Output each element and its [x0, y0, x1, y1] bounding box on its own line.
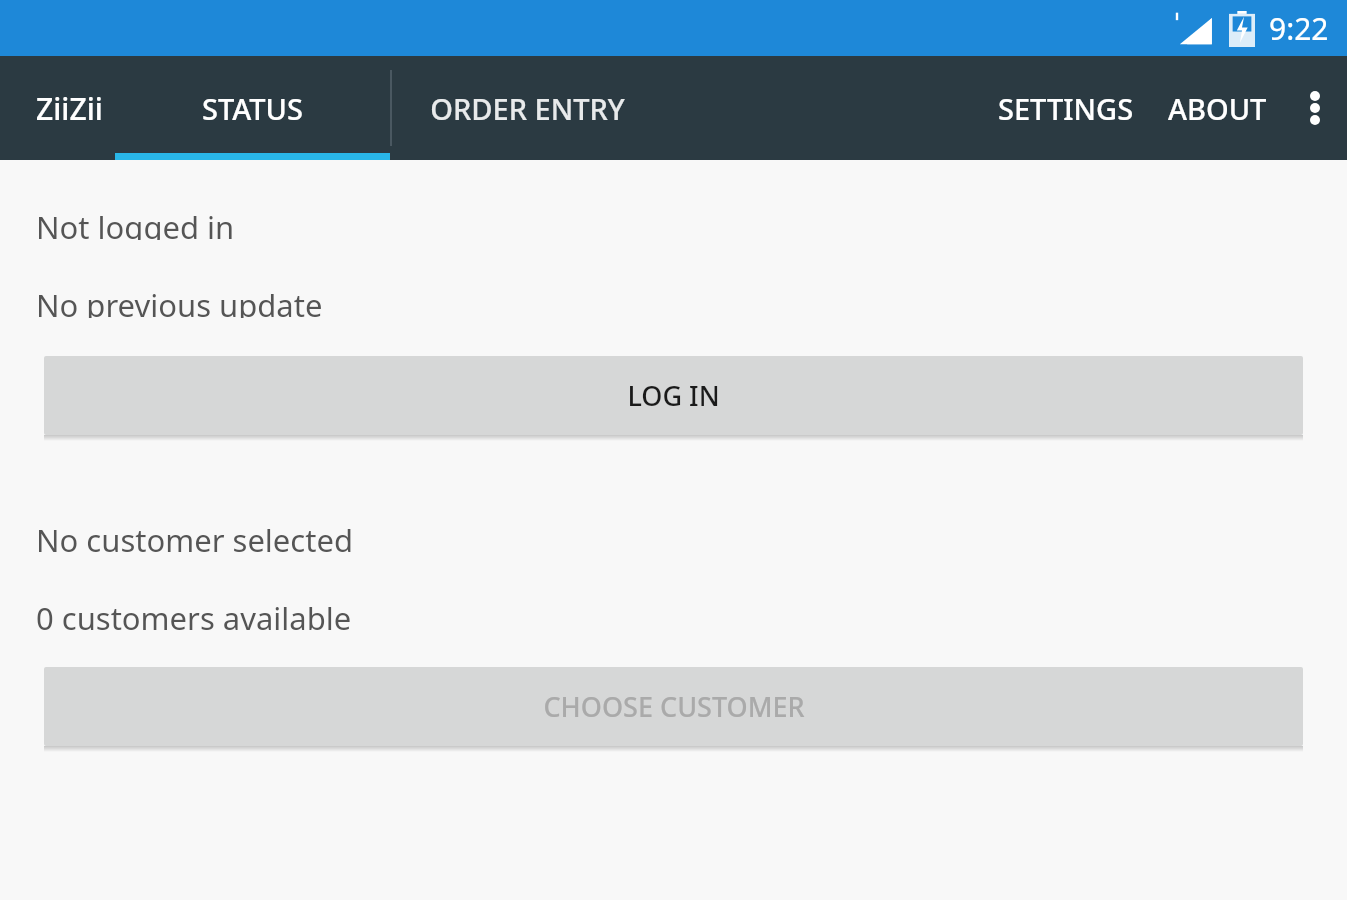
- button[interactable]: STATUS: [115, 56, 390, 160]
- button[interactable]: ABOUT: [1152, 56, 1283, 160]
- staticText: SETTINGS: [998, 89, 1134, 128]
- button[interactable]: More options: [1283, 56, 1347, 160]
- staticText: ABOUT: [1168, 89, 1267, 128]
- button[interactable]: ORDER ENTRY: [392, 56, 662, 160]
- staticText: STATUS: [202, 89, 303, 128]
- staticText: ORDER ENTRY: [430, 89, 625, 128]
- button[interactable]: LOG IN: [44, 356, 1303, 435]
- staticText: 0 customers available: [36, 597, 352, 631]
- staticText: LOG IN: [627, 377, 720, 414]
- staticText: Not logged in: [36, 206, 235, 240]
- button[interactable]: SETTINGS: [980, 56, 1152, 160]
- button[interactable]: ZiiZii: [0, 56, 115, 160]
- staticText: 9:22: [1269, 8, 1329, 49]
- staticText: CHOOSE CUSTOMER: [543, 688, 805, 725]
- staticText: No previous update: [36, 284, 323, 318]
- staticText: No customer selected: [36, 519, 353, 553]
- button: CHOOSE CUSTOMER: [44, 667, 1303, 746]
- staticText: ZiiZii: [36, 88, 103, 129]
